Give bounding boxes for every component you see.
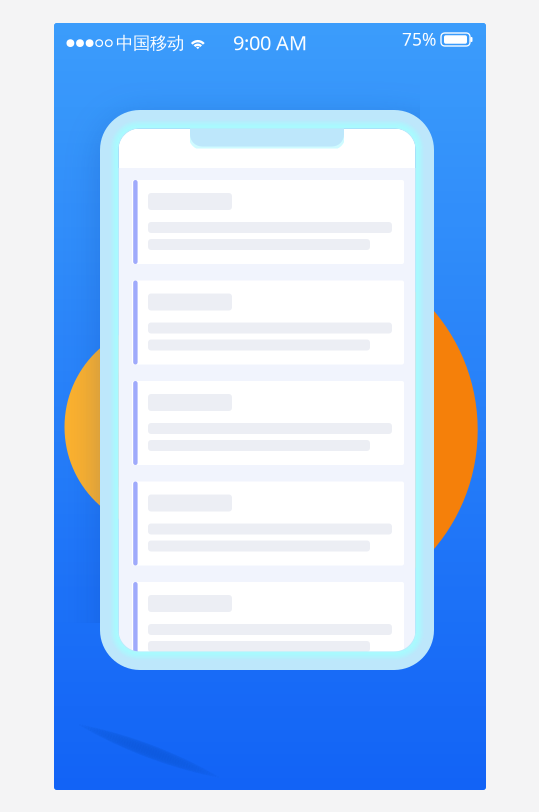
- staticText: 9:00 AM: [233, 29, 307, 56]
- staticText: 中国移动: [116, 32, 184, 54]
- staticText: 75%: [402, 27, 436, 50]
- button[interactable]: List item: [132, 582, 404, 666]
- button[interactable]: List item: [132, 180, 404, 264]
- button[interactable]: List item: [132, 381, 404, 465]
- button[interactable]: List item: [132, 280, 404, 364]
- button[interactable]: List item: [132, 481, 404, 565]
